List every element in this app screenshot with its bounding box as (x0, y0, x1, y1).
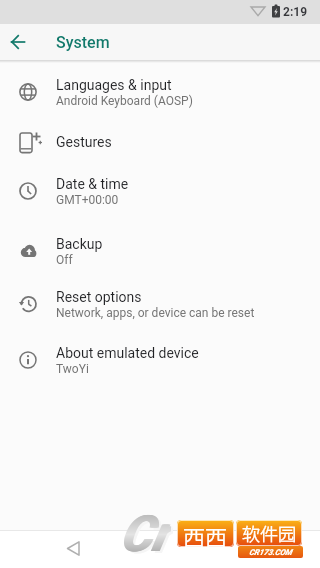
staticText: Cr (123, 507, 173, 559)
staticText: Date & time (56, 176, 129, 192)
staticText: Cr (121, 505, 171, 557)
staticText: Cr (119, 505, 169, 557)
staticText: Cr (120, 505, 170, 557)
staticText: Backup (56, 236, 103, 252)
staticText: About emulated device (56, 345, 199, 361)
staticText: Android Keyboard (AOSP) (56, 94, 193, 108)
staticText: GMT+00:00 (56, 193, 119, 207)
staticText: Languages & input (56, 77, 172, 93)
staticText: System (56, 33, 110, 52)
staticText: 西西 (183, 520, 228, 547)
button[interactable] (0, 24, 36, 60)
button[interactable]: Reset options (0, 280, 320, 328)
staticText: Network, apps, or device can be reset (56, 306, 255, 320)
staticText: Gestures (56, 134, 112, 150)
staticText: 软件园 (242, 520, 296, 546)
staticText: CR173.COM (249, 548, 292, 557)
staticText: TwoYi (56, 362, 89, 376)
button[interactable]: About emulated device (0, 336, 320, 384)
button[interactable] (53, 531, 93, 568)
button[interactable]: Backup (0, 227, 320, 275)
staticText: Reset options (56, 289, 142, 305)
staticText: 2:19 (283, 5, 308, 19)
button[interactable]: Date & time (0, 167, 320, 215)
button[interactable]: Languages & input (0, 68, 320, 116)
button[interactable]: Gestures (0, 118, 320, 166)
staticText: Off (56, 253, 73, 267)
